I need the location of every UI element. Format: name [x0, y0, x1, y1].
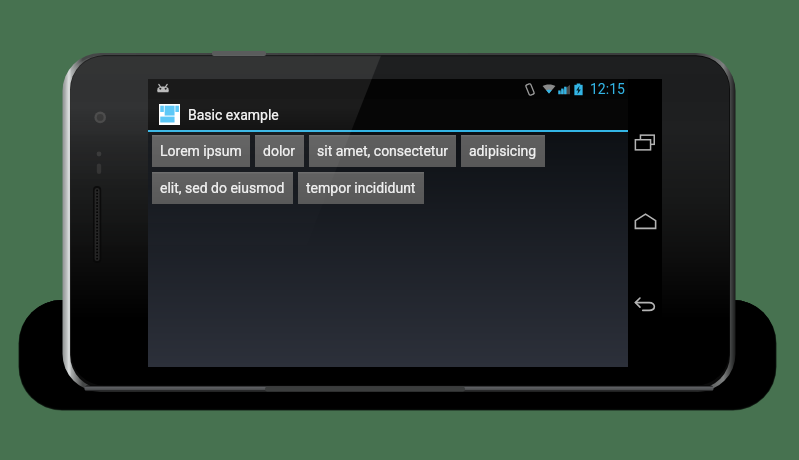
button[interactable]: Back	[629, 287, 662, 320]
button[interactable]: adipisicing	[461, 135, 545, 167]
staticText: 12:15	[590, 81, 625, 97]
staticText: Lorem ipsum	[160, 143, 242, 159]
button[interactable]: Home	[629, 205, 662, 238]
button[interactable]: Lorem ipsum	[152, 135, 250, 167]
button[interactable]: Recents	[629, 126, 662, 159]
staticText: elit, sed do eiusmod	[160, 180, 285, 196]
button[interactable]: tempor incididunt	[298, 172, 424, 204]
staticText: tempor incididunt	[306, 180, 416, 196]
staticText: sit amet, consectetur	[317, 143, 448, 159]
button[interactable]: dolor	[255, 135, 304, 167]
staticText: Basic example	[188, 107, 279, 123]
staticText: dolor	[263, 143, 296, 159]
staticText: adipisicing	[469, 143, 537, 159]
button[interactable]: sit amet, consectetur	[309, 135, 456, 167]
button[interactable]: elit, sed do eiusmod	[152, 172, 293, 204]
